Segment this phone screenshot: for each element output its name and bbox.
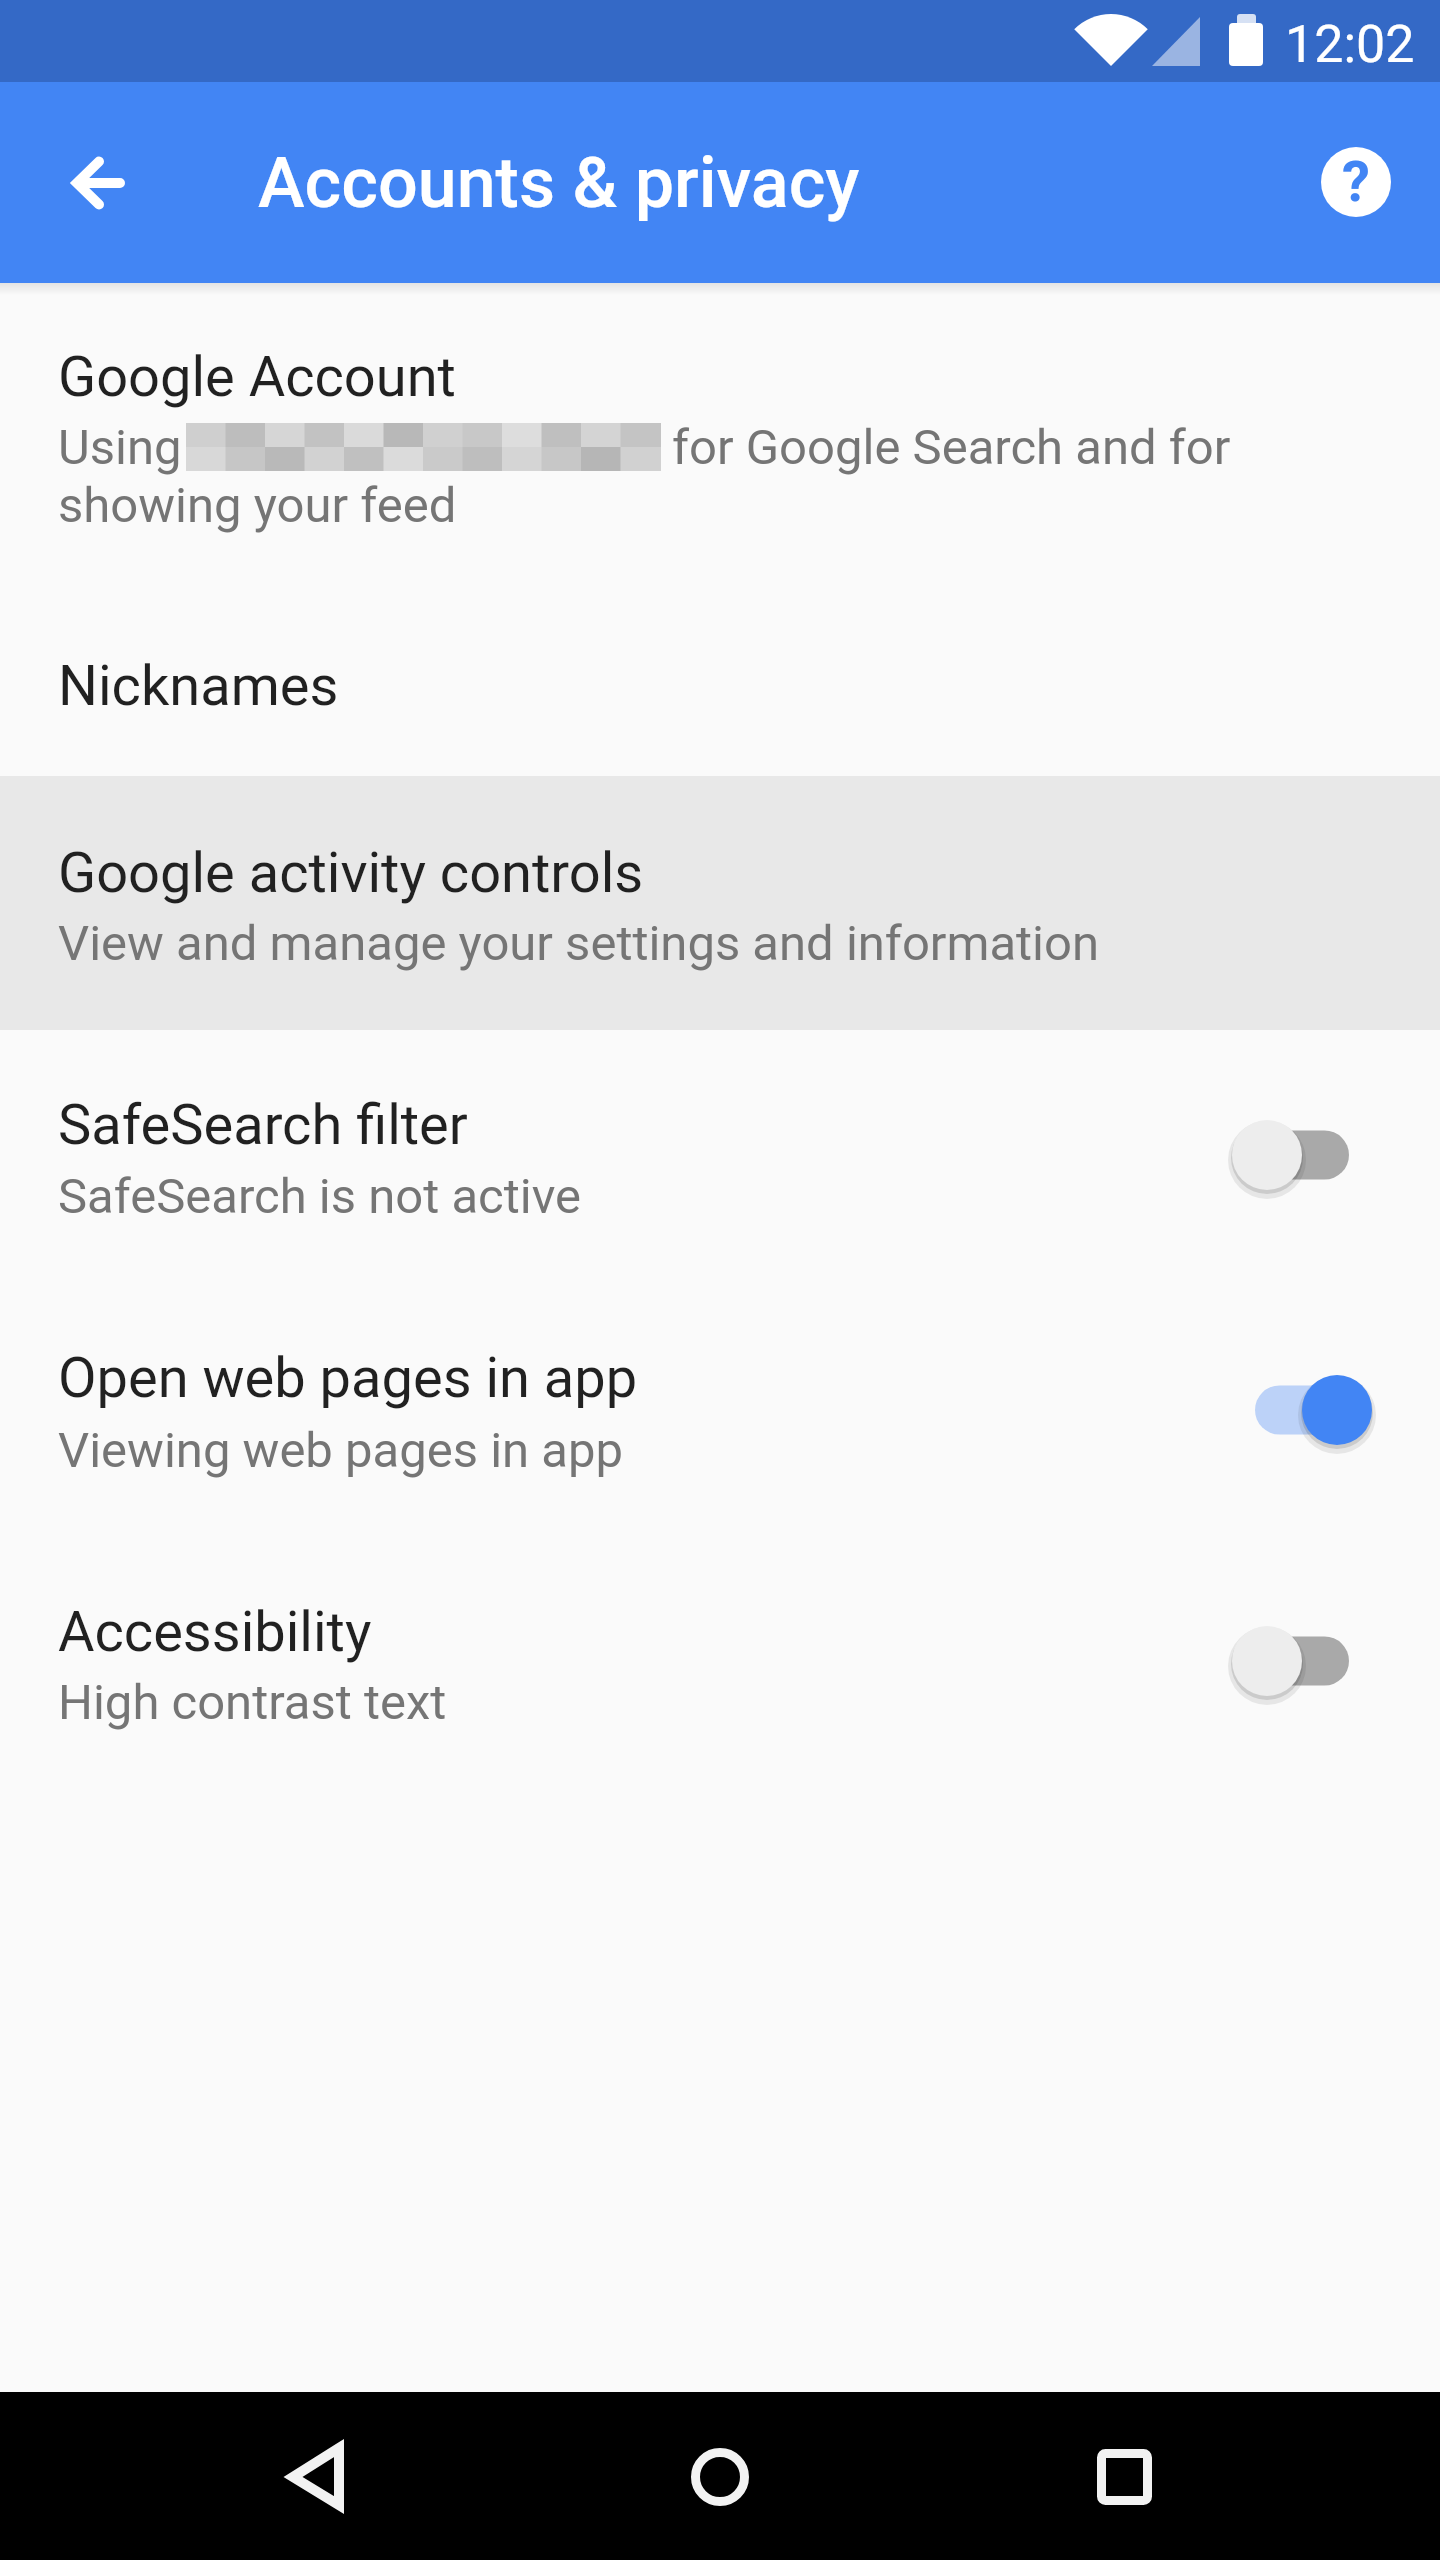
staticText: for Google Search and for [672,419,1231,476]
button[interactable] [650,2406,790,2546]
staticText: Using [58,419,182,476]
staticText: High contrast text [58,1674,447,1731]
staticText: Viewing web pages in app [58,1422,623,1479]
button[interactable]: Google activity controls [0,776,1440,1030]
button[interactable]: Google Account [0,303,1440,593]
button[interactable] [1234,1611,1384,1711]
staticText: Open web pages in app [58,1345,638,1411]
button[interactable]: Nicknames [0,610,1440,760]
button[interactable]: SafeSearch filter [0,1046,1440,1276]
button[interactable] [1053,2406,1193,2546]
staticText: Accounts & privacy [258,142,860,224]
button[interactable]: ? [1321,147,1391,217]
staticText: showing your feed [58,477,457,534]
staticText: SafeSearch filter [58,1092,468,1158]
button[interactable] [245,2406,385,2546]
staticText: Google Account [58,344,456,410]
staticText: View and manage your settings and inform… [58,915,1100,972]
staticText: Google activity controls [58,840,644,906]
button[interactable] [1234,1105,1384,1205]
button[interactable]: Open web pages in app [0,1300,1440,1530]
staticText: Nicknames [58,653,339,719]
staticText: SafeSearch is not active [58,1168,582,1225]
button[interactable] [40,124,156,240]
staticText: 12:02 [1285,14,1415,75]
staticText: Accessibility [58,1599,372,1665]
button[interactable] [1255,1360,1405,1460]
button[interactable]: Accessibility [0,1553,1440,1783]
staticText: ? [1342,149,1370,215]
